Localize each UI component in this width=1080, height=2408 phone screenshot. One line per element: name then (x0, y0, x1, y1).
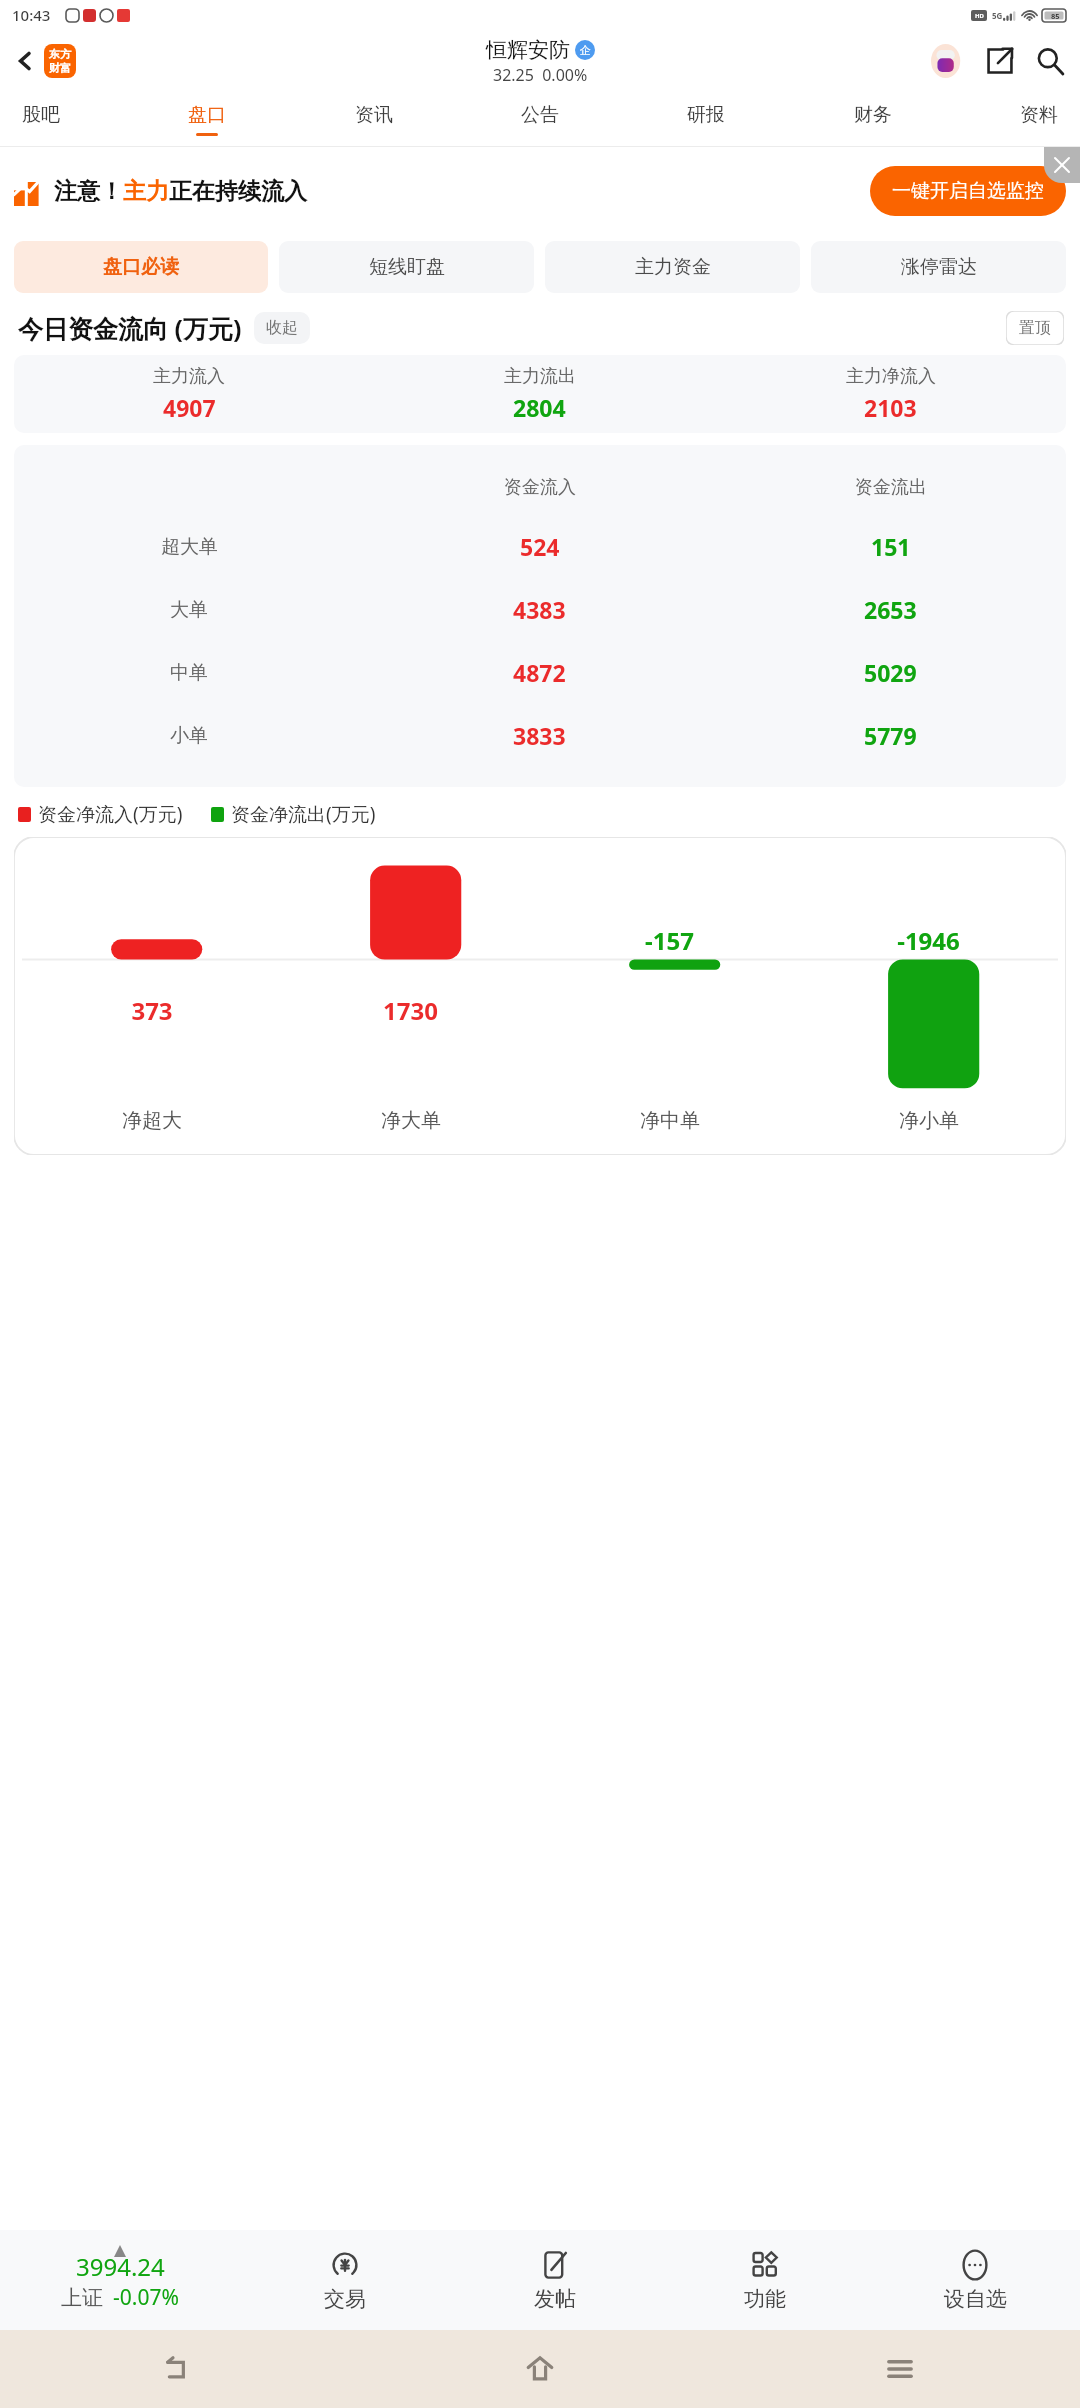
button[interactable]: 设自选 (870, 2250, 1080, 2312)
staticText: 超大单 (161, 535, 218, 559)
staticText: 4907 (163, 392, 216, 423)
button[interactable]: Recents (720, 2330, 1080, 2408)
staticText: 主力流入 (153, 365, 225, 388)
staticText: 资讯 (355, 103, 393, 127)
staticText: 研报 (687, 103, 725, 127)
staticText: 3833 (513, 720, 566, 751)
staticText: 注意！ (54, 177, 123, 206)
staticText: HD (975, 12, 984, 20)
staticText: 5G (992, 10, 1003, 21)
staticText: 4383 (513, 594, 566, 625)
button[interactable]: 公告 (515, 99, 565, 140)
staticText: 5779 (864, 720, 917, 751)
button[interactable]: 资料 (1014, 99, 1064, 140)
staticText: 1730 (383, 994, 438, 1027)
staticText: 置顶 (1019, 318, 1051, 338)
button[interactable]: 注意！ (14, 147, 1066, 235)
staticText: 5029 (864, 657, 917, 688)
staticText: 净中单 (640, 1108, 700, 1133)
button[interactable]: Close (1044, 147, 1080, 183)
staticText: 32.25 0.00% (493, 64, 588, 86)
button[interactable]: Back (0, 2330, 360, 2408)
button[interactable]: 资金流入 (14, 445, 1066, 787)
staticText: 大单 (170, 598, 208, 622)
button[interactable]: 373 (14, 837, 1066, 1155)
staticText: 公告 (521, 103, 559, 127)
button[interactable]: 资讯 (349, 99, 399, 140)
staticText: 短线盯盘 (369, 255, 445, 279)
staticText: 主力 (123, 177, 169, 206)
button[interactable]: 一键开启自选监控 (870, 166, 1066, 216)
staticText: 小单 (170, 724, 208, 748)
staticText: 净超大 (122, 1108, 182, 1133)
button[interactable]: 财务 (848, 99, 898, 140)
button[interactable]: 盘口必读 (14, 241, 268, 293)
button[interactable]: 置顶 (1006, 311, 1064, 345)
staticText: 今日资金流向 (万元) (18, 311, 242, 345)
button[interactable]: 股吧 (16, 99, 66, 140)
staticText: 资料 (1020, 103, 1058, 127)
staticText: 4872 (513, 657, 566, 688)
button[interactable]: Search (1034, 45, 1066, 77)
staticText: 资金流出 (855, 476, 927, 499)
staticText: 股吧 (22, 103, 60, 127)
staticText: 收起 (266, 318, 298, 338)
staticText: 上证 (61, 2285, 103, 2311)
button[interactable]: Assistant (930, 43, 966, 79)
button[interactable]: 盘口 (182, 99, 232, 140)
staticText: 恒辉安防 (486, 37, 570, 63)
staticText: 正在持续流入 (169, 177, 307, 206)
staticText: 2653 (864, 594, 917, 625)
staticText: 10:43 (12, 5, 51, 25)
staticText: 东方 (49, 47, 71, 61)
staticText: 中单 (170, 661, 208, 685)
staticText: 2804 (513, 392, 566, 423)
staticText: -157 (645, 924, 694, 957)
staticText: 盘口 (188, 103, 226, 127)
button[interactable]: Share (984, 45, 1016, 77)
button[interactable]: 3994.24 (0, 2250, 240, 2312)
staticText: 资金净流出(万元) (231, 801, 376, 827)
staticText: -1946 (897, 924, 960, 957)
staticText: 3994.24 (76, 2250, 165, 2283)
staticText: 一键开启自选监控 (892, 179, 1044, 203)
staticText: 2103 (864, 392, 917, 423)
button[interactable]: Back (8, 38, 82, 84)
button[interactable]: 研报 (681, 99, 731, 140)
button[interactable]: Home (360, 2330, 720, 2408)
staticText: 净小单 (899, 1108, 959, 1133)
staticText: 发帖 (534, 2286, 576, 2312)
staticText: 主力净流入 (846, 365, 936, 388)
staticText: 功能 (744, 2286, 786, 2312)
staticText: 151 (871, 531, 911, 562)
staticText: 企 (580, 43, 591, 57)
staticText: 85 (1051, 11, 1060, 21)
staticText: 交易 (324, 2286, 366, 2312)
button[interactable]: 涨停雷达 (811, 241, 1066, 293)
staticText: 资金净流入(万元) (38, 801, 183, 827)
staticText: 涨停雷达 (901, 255, 977, 279)
staticText: -0.07% (113, 2283, 179, 2312)
staticText: 设自选 (944, 2286, 1007, 2312)
button[interactable]: 主力流入 (14, 355, 1066, 433)
staticText: 主力流出 (504, 365, 576, 388)
staticText: 财富 (49, 61, 71, 75)
button[interactable]: 发帖 (450, 2250, 660, 2312)
staticText: 净大单 (381, 1108, 441, 1133)
staticText: 资金流入 (504, 476, 576, 499)
staticText: 524 (520, 531, 560, 562)
button[interactable]: 交易 (240, 2250, 450, 2312)
button[interactable]: 功能 (660, 2250, 870, 2312)
staticText: 373 (131, 994, 173, 1027)
staticText: 主力资金 (635, 255, 711, 279)
button[interactable]: 主力资金 (545, 241, 800, 293)
staticText: 财务 (854, 103, 892, 127)
button[interactable]: 收起 (254, 312, 310, 344)
button[interactable]: 短线盯盘 (279, 241, 534, 293)
staticText: 盘口必读 (103, 255, 179, 279)
